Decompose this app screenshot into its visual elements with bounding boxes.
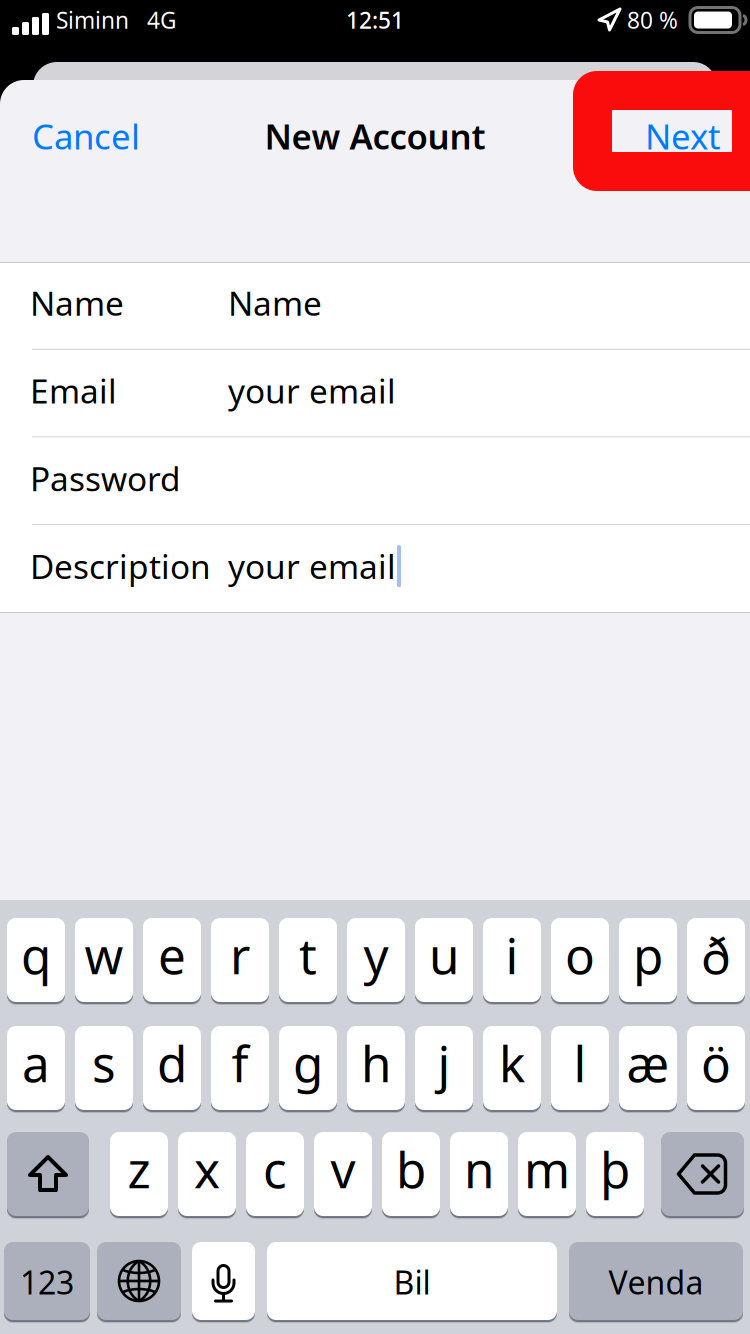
staticText: j <box>437 1030 450 1096</box>
button[interactable]: þ <box>586 1132 644 1219</box>
staticText: Name <box>30 281 124 325</box>
staticText: 123 <box>20 1261 74 1303</box>
button[interactable]: c <box>246 1132 304 1219</box>
staticText: k <box>499 1030 525 1096</box>
button[interactable]: Cancel <box>27 98 145 174</box>
button[interactable]: h <box>347 1026 405 1113</box>
staticText: Venda <box>608 1261 703 1303</box>
staticText: q <box>21 922 51 988</box>
staticText: your email <box>228 368 396 413</box>
button[interactable]: l <box>551 1026 609 1113</box>
staticText: þ <box>600 1136 630 1202</box>
button[interactable]: ð <box>687 918 745 1005</box>
button[interactable]: Venda <box>569 1242 743 1323</box>
staticText: New Account <box>264 113 485 159</box>
staticText: ð <box>701 922 731 988</box>
button[interactable]: Dictation <box>192 1242 255 1323</box>
button[interactable]: d <box>143 1026 201 1113</box>
staticText: e <box>158 922 186 988</box>
button[interactable]: z <box>110 1132 168 1219</box>
staticText: ö <box>701 1030 731 1096</box>
button[interactable]: r <box>211 918 269 1005</box>
staticText: 12:51 <box>346 5 404 35</box>
staticText: 80 % <box>627 5 678 35</box>
button[interactable]: o <box>551 918 609 1005</box>
button[interactable]: k <box>483 1026 541 1113</box>
staticText: your email <box>228 544 396 588</box>
button[interactable]: y <box>347 918 405 1005</box>
staticText: y <box>363 922 388 988</box>
staticText: Name <box>228 281 322 325</box>
button[interactable]: Bil <box>267 1242 557 1323</box>
staticText: Email <box>30 368 117 413</box>
button[interactable]: s <box>75 1026 133 1113</box>
button[interactable]: Next keyboard <box>97 1242 181 1323</box>
staticText: s <box>92 1030 116 1096</box>
button[interactable]: 123 <box>4 1242 90 1323</box>
staticText: g <box>293 1030 323 1096</box>
button[interactable]: ö <box>687 1026 745 1113</box>
staticText: f <box>231 1030 248 1096</box>
button[interactable]: f <box>211 1026 269 1113</box>
button[interactable]: p <box>619 918 677 1005</box>
staticText: a <box>22 1030 50 1096</box>
button[interactable]: w <box>75 918 133 1005</box>
staticText: v <box>330 1136 355 1202</box>
button[interactable]: b <box>382 1132 440 1219</box>
staticText: w <box>84 922 123 988</box>
button[interactable]: t <box>279 918 337 1005</box>
staticText: z <box>127 1136 150 1202</box>
staticText: t <box>299 922 317 988</box>
button[interactable]: v <box>314 1132 372 1219</box>
button[interactable]: q <box>7 918 65 1005</box>
staticText: c <box>263 1136 287 1202</box>
staticText: o <box>565 922 595 988</box>
button[interactable]: Name <box>0 262 750 350</box>
staticText: x <box>194 1136 220 1202</box>
button[interactable]: n <box>450 1132 508 1219</box>
staticText: l <box>573 1030 586 1096</box>
button[interactable]: Shift <box>7 1132 89 1219</box>
staticText: h <box>361 1030 391 1096</box>
button[interactable]: Password <box>0 437 750 525</box>
button[interactable]: a <box>7 1026 65 1113</box>
staticText: b <box>396 1136 426 1202</box>
staticText: Bil <box>393 1261 430 1303</box>
button[interactable]: æ <box>619 1026 677 1113</box>
button[interactable]: g <box>279 1026 337 1113</box>
staticText: r <box>230 922 250 988</box>
button[interactable]: j <box>415 1026 473 1113</box>
staticText: Password <box>30 456 181 500</box>
staticText: æ <box>626 1030 669 1096</box>
staticText: Next <box>645 113 721 159</box>
button[interactable]: Next <box>640 98 726 174</box>
staticText: d <box>157 1030 187 1096</box>
staticText: n <box>464 1136 494 1202</box>
staticText: i <box>505 922 518 988</box>
button[interactable]: Description <box>0 525 750 613</box>
staticText: Cancel <box>32 113 140 159</box>
button[interactable]: u <box>415 918 473 1005</box>
staticText: Siminn 4G <box>56 5 177 35</box>
staticText: u <box>429 922 459 988</box>
button[interactable]: x <box>178 1132 236 1219</box>
staticText: p <box>633 922 663 988</box>
staticText: Description <box>30 544 211 588</box>
button[interactable]: m <box>518 1132 576 1219</box>
button[interactable]: e <box>143 918 201 1005</box>
button[interactable]: i <box>483 918 541 1005</box>
button[interactable]: Email <box>0 350 750 438</box>
staticText: m <box>524 1136 570 1202</box>
button[interactable]: Delete <box>661 1132 744 1219</box>
